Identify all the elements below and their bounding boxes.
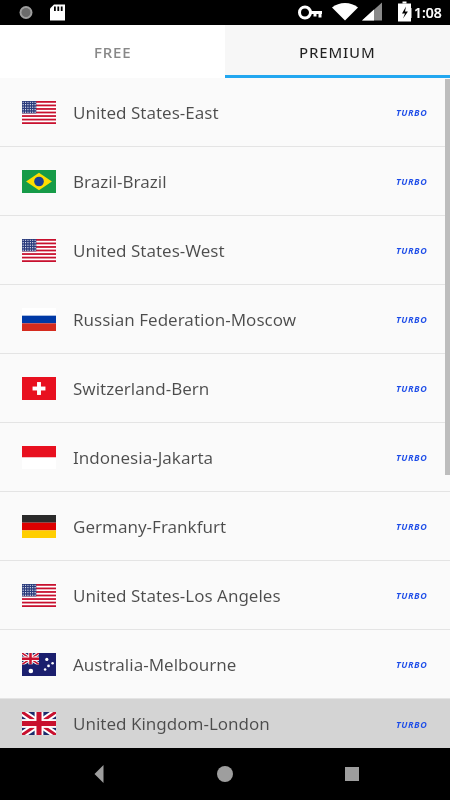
staticText: Russian Federation-Moscow [73, 308, 396, 331]
button[interactable]: Indonesia-Jakarta [0, 423, 450, 491]
staticText: United Kingdom-London [73, 712, 396, 735]
staticText: Indonesia-Jakarta [73, 446, 396, 469]
button[interactable]: FREE [0, 25, 225, 78]
button[interactable]: United States-Los Angeles [0, 561, 450, 629]
staticText: United States-Los Angeles [73, 584, 396, 607]
staticText: TURBO [396, 106, 428, 118]
button[interactable]: Switzerland-Bern [0, 354, 450, 422]
staticText: TURBO [396, 658, 428, 670]
staticText: Australia-Melbourne [73, 653, 396, 676]
staticText: TURBO [396, 451, 428, 463]
button[interactable]: Russian Federation-Moscow [0, 285, 450, 353]
button[interactable]: Recent apps [324, 748, 380, 800]
staticText: Brazil-Brazil [73, 170, 396, 193]
staticText: PREMIUM [299, 42, 376, 62]
staticText: TURBO [396, 175, 428, 187]
staticText: TURBO [396, 244, 428, 256]
button[interactable]: United States-East [0, 78, 450, 146]
staticText: United States-West [73, 239, 396, 262]
button[interactable]: Home [197, 748, 253, 800]
button[interactable]: Brazil-Brazil [0, 147, 450, 215]
button[interactable]: Germany-Frankfurt [0, 492, 450, 560]
staticText: TURBO [396, 718, 428, 730]
staticText: 11:08 [406, 3, 442, 22]
button[interactable]: United Kingdom-London [0, 699, 450, 748]
button[interactable]: United States-West [0, 216, 450, 284]
staticText: TURBO [396, 313, 428, 325]
staticText: TURBO [396, 382, 428, 394]
button[interactable]: Back [71, 748, 127, 800]
staticText: Germany-Frankfurt [73, 515, 396, 538]
staticText: TURBO [396, 520, 428, 532]
staticText: TURBO [396, 589, 428, 601]
staticText: Switzerland-Bern [73, 377, 396, 400]
button[interactable]: PREMIUM [225, 25, 450, 78]
button[interactable]: Australia-Melbourne [0, 630, 450, 698]
staticText: United States-East [73, 101, 396, 124]
staticText: FREE [94, 42, 132, 62]
